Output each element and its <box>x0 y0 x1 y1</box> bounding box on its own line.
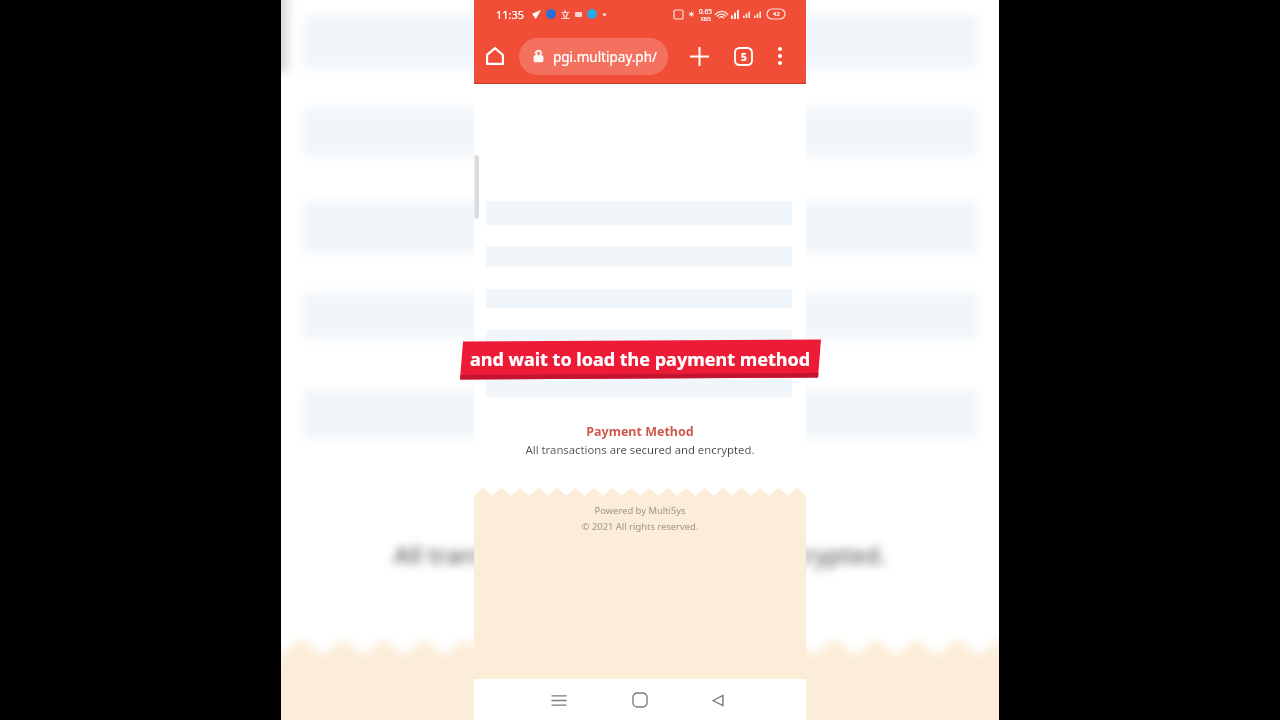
button[interactable]: pgi.multipay.ph/ <box>519 38 668 75</box>
staticText: pgi.multipay.ph/ <box>553 48 658 66</box>
staticText: © 2021 All rights reserved. <box>474 520 806 533</box>
button[interactable]: Home <box>622 682 658 718</box>
staticText: 11:35 <box>496 7 525 22</box>
staticText: Powered by MultiSys <box>474 504 806 517</box>
staticText: KB/S <box>701 16 711 22</box>
staticText: All transactions are secured and encrypt… <box>474 442 806 457</box>
button[interactable]: New tab <box>683 40 715 72</box>
button[interactable]: Recent apps <box>541 682 577 718</box>
button[interactable]: More options <box>766 42 794 70</box>
staticText: 5 <box>741 50 747 64</box>
button[interactable]: Back <box>700 682 736 718</box>
button[interactable]: Tabs <box>727 40 759 72</box>
staticText: ✶ <box>688 10 695 19</box>
staticText: All transactions are secured and encrypt… <box>281 538 999 571</box>
button[interactable]: Home <box>480 41 510 71</box>
staticText: 立 <box>561 9 570 20</box>
staticText: Payment Method <box>474 423 806 440</box>
staticText: 0.65 <box>699 7 712 16</box>
staticText: 42 <box>773 10 780 18</box>
staticText: and wait to load the payment method <box>470 347 811 372</box>
